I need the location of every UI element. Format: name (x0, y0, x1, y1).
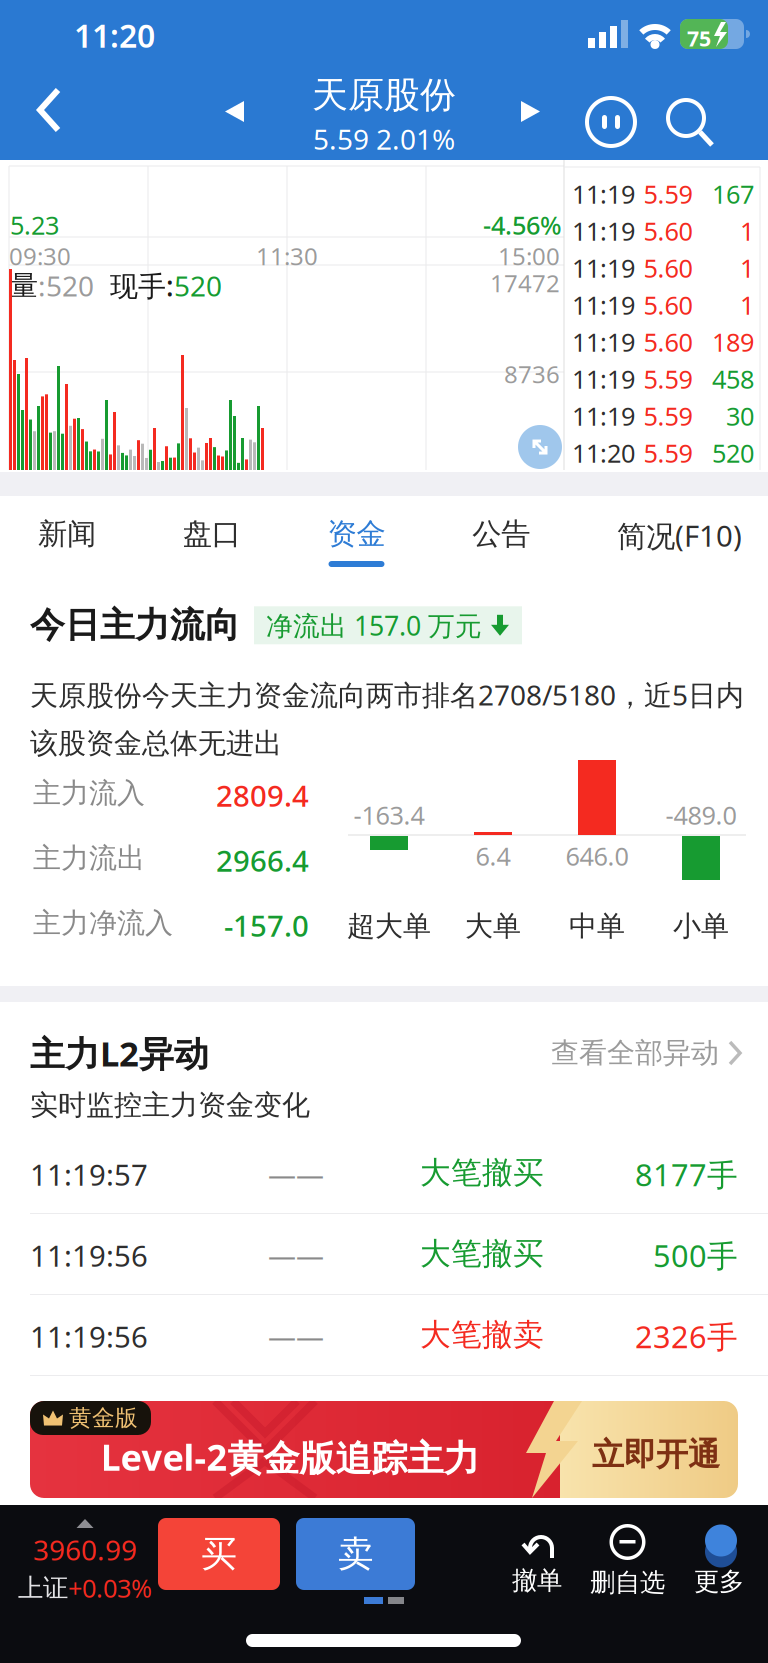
staticText: 大笔撤买 (420, 1154, 544, 1192)
staticText: 520 (712, 436, 754, 470)
staticText: 5.60 (643, 288, 692, 322)
staticText: 大笔撤卖 (420, 1316, 544, 1354)
button[interactable]: 上证指数 (18, 1519, 152, 1605)
button[interactable]: 新闻 (38, 516, 96, 567)
staticText: +0.03% (68, 1571, 152, 1605)
staticText: 6.4 (475, 839, 510, 873)
staticText: 5.59 (643, 399, 692, 433)
staticText: 撤单 (512, 1565, 562, 1596)
staticText: 资金 (327, 516, 385, 552)
staticText: -157.0 (224, 906, 309, 945)
button[interactable]: 11:19:56 (0, 1214, 768, 1294)
button[interactable]: More options (585, 96, 637, 148)
button[interactable]: 卖 (296, 1518, 415, 1590)
staticText: —— (268, 1317, 324, 1354)
staticText: 2966.4 (216, 841, 309, 880)
staticText: 更多 (694, 1566, 744, 1597)
staticText: 简况(F10) (617, 516, 742, 555)
staticText: 盘口 (183, 516, 241, 552)
staticText: 实时监控主力资金变化 (30, 1088, 310, 1122)
staticText: 11:19 (572, 177, 635, 211)
staticText: 新闻 (38, 516, 96, 552)
staticText: 09:30 (9, 240, 71, 272)
staticText: —— (268, 1155, 324, 1192)
button[interactable]: Previous stock (225, 101, 244, 122)
button[interactable]: 撤单 (512, 1525, 562, 1596)
staticText: 5.59 (643, 362, 692, 396)
staticText: 500手 (653, 1235, 738, 1276)
staticText: 30 (726, 399, 754, 433)
staticText: 小单 (673, 909, 729, 943)
staticText: 天原股份 (312, 73, 456, 117)
staticText: 天原股份今天主力资金流向两市排名2708/5180，近5日内 (30, 676, 744, 713)
staticText: 646.0 (565, 839, 628, 873)
staticText: 11:19 (572, 251, 635, 285)
staticText: 量 (10, 268, 38, 303)
staticText: 11:30 (256, 240, 318, 272)
staticText: 上证 (18, 1572, 68, 1603)
staticText: 1 (740, 288, 754, 322)
staticText: 2326手 (635, 1316, 738, 1357)
staticText: 5.59 (643, 177, 692, 211)
button[interactable]: 更多 (694, 1520, 744, 1597)
staticText: 该股资金总体无进出 (30, 726, 282, 761)
staticText: :520 (38, 267, 94, 304)
button[interactable]: 开通Level-2黄金版 (30, 1401, 738, 1498)
staticText: 超大单 (347, 909, 431, 943)
staticText: 公告 (472, 516, 530, 552)
staticText: 5.59 2.01% (313, 120, 455, 157)
button[interactable]: 盘口 (183, 516, 241, 567)
button[interactable]: Next stock (521, 101, 540, 122)
staticText: 11:19 (572, 325, 635, 359)
staticText: -489.0 (665, 798, 736, 832)
staticText: 主力流出 (33, 841, 145, 875)
staticText: 11:19 (572, 214, 635, 248)
staticText: 买 (201, 1532, 237, 1576)
staticText: 75 (687, 24, 711, 52)
staticText: 5.60 (643, 214, 692, 248)
button[interactable]: 买 (158, 1518, 280, 1590)
staticText: 11:19 (572, 288, 635, 322)
button[interactable]: Back (32, 84, 72, 136)
staticText: 520 (174, 267, 222, 304)
staticText: 中单 (569, 909, 625, 943)
staticText: 167 (712, 177, 754, 211)
staticText: 458 (712, 362, 754, 396)
staticText: 5.60 (643, 325, 692, 359)
staticText: 今日主力流向 (30, 604, 240, 647)
staticText: -163.4 (353, 798, 424, 832)
button[interactable]: 删自选 (590, 1524, 665, 1598)
staticText: 1 (740, 251, 754, 285)
staticText: 2809.4 (216, 776, 309, 815)
staticText: 黄金版 (69, 1404, 138, 1432)
button[interactable]: Search (666, 98, 714, 146)
staticText: 删自选 (590, 1567, 665, 1598)
staticText: 大单 (465, 909, 521, 943)
staticText: 11:19:56 (30, 1317, 148, 1356)
staticText: 3960.99 (33, 1531, 137, 1568)
staticText: —— (268, 1236, 324, 1273)
staticText: 卖 (337, 1532, 373, 1576)
staticText: 主力L2异动 (30, 1030, 209, 1076)
staticText: 查看全部异动 (551, 1036, 719, 1070)
staticText: 主力净流入 (33, 906, 173, 940)
staticText: 17472 (490, 267, 560, 299)
button[interactable]: 查看全部异动 (551, 1036, 742, 1070)
staticText: -4.56% (483, 208, 562, 242)
staticText: 15:00 (498, 240, 560, 272)
staticText: 8177手 (635, 1154, 738, 1195)
button[interactable]: 简况(F10) (617, 516, 742, 570)
staticText: 11:19 (572, 399, 635, 433)
staticText: 11:20 (74, 14, 155, 56)
staticText: 主力流入 (33, 776, 145, 810)
staticText: 8736 (504, 358, 560, 390)
staticText: 5.23 (10, 208, 59, 242)
button[interactable]: 资金 (327, 516, 385, 567)
staticText: 净流出 157.0 万元 (266, 608, 482, 643)
button[interactable]: Expand chart (518, 425, 562, 469)
button[interactable]: 11:19:57 (0, 1133, 768, 1213)
button[interactable]: 11:19:56 (0, 1295, 768, 1375)
staticText: Level-2黄金版追踪主力 (100, 1433, 479, 1481)
button[interactable]: 公告 (472, 516, 530, 567)
staticText: 立即开通 (592, 1435, 720, 1474)
